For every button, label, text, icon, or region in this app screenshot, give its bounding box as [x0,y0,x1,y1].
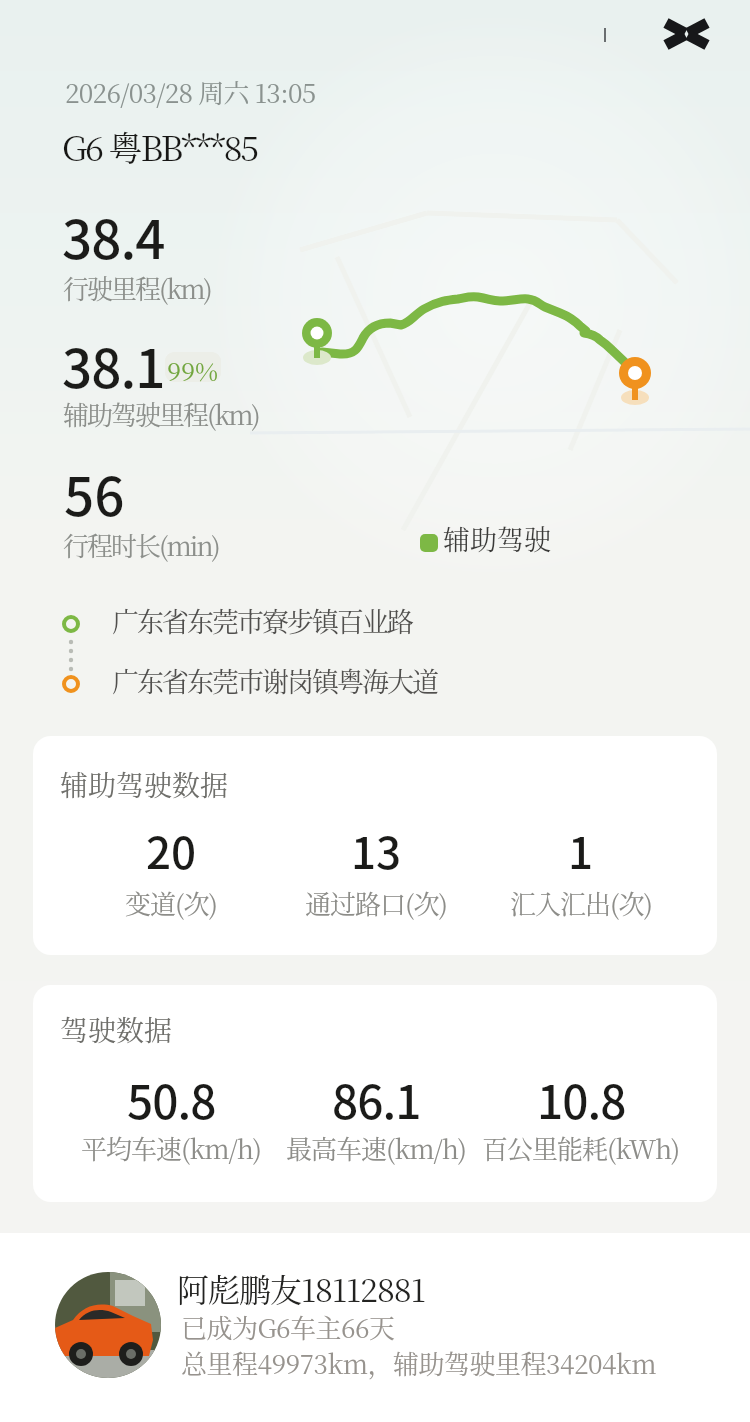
staticText: 百公里能耗(kWh) [482,1129,680,1166]
staticText: 行程时长(min) [63,526,219,563]
staticText: 变道(次) [125,884,217,921]
staticText: 广东省东莞市谢岗镇粤海大道 [112,661,437,700]
staticText: 50.8 [127,1066,216,1133]
staticText: 辅助驾驶里程(km) [63,395,259,432]
staticText: 驾驶数据 [60,1009,173,1049]
button[interactable] [33,985,717,1202]
staticText: 辅助驾驶 [443,519,551,558]
staticText: 1 [568,818,594,882]
staticText: 10.8 [537,1066,626,1133]
staticText: 已成为G6车主66天 [181,1308,395,1345]
staticText: 辅助驾驶数据 [60,764,229,804]
staticText: 阿彪鹏友18112881 [177,1265,425,1311]
staticText: 20 [146,818,197,882]
staticText: 13 [351,818,402,882]
staticText: 平均车速(km/h) [81,1129,262,1166]
staticText: 56 [64,455,125,532]
staticText: 最高车速(km/h) [286,1129,467,1166]
staticText: 2026/03/28 周六 13:05 [65,73,316,110]
staticText: 通过路口(次) [305,884,447,921]
staticText: 汇入汇出(次) [510,884,652,921]
staticText: 行驶里程(km) [63,269,211,306]
staticText: 总里程49973km，辅助驾驶里程34204km [181,1344,656,1381]
staticText: 99% [167,352,219,382]
staticText: 38.1 [62,327,165,404]
staticText: 广东省东莞市寮步镇百业路 [112,601,412,640]
button[interactable] [0,1233,750,1422]
staticText: 38.4 [62,198,165,275]
button[interactable] [33,736,717,955]
staticText: 86.1 [332,1066,421,1133]
staticText: G6 粤BB***85 [62,122,258,171]
